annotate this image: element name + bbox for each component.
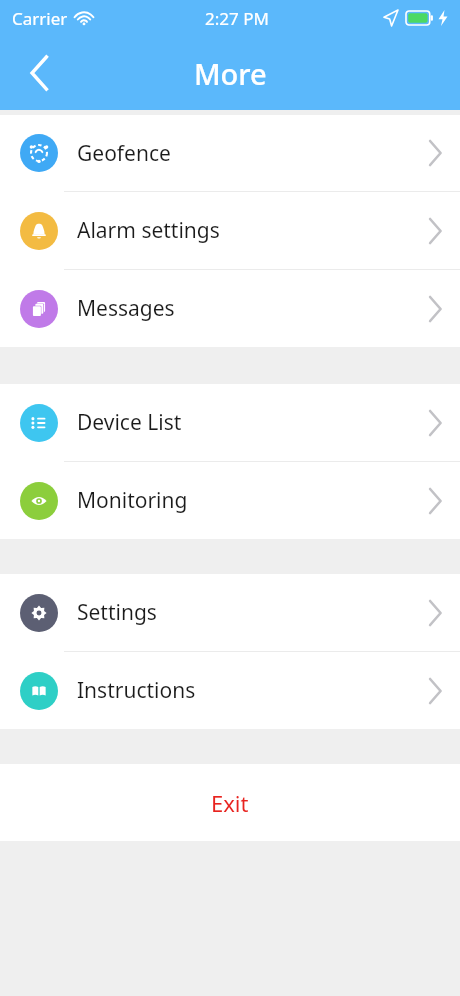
button[interactable]: Exit bbox=[0, 764, 460, 841]
staticText: Exit bbox=[211, 788, 249, 818]
button[interactable]: Monitoring bbox=[0, 462, 460, 539]
staticText: Messages bbox=[77, 294, 175, 323]
staticText: Carrier bbox=[12, 7, 68, 30]
button[interactable]: Geofence bbox=[0, 115, 460, 191]
staticText: Monitoring bbox=[77, 486, 188, 515]
button[interactable]: Alarm settings bbox=[0, 192, 460, 269]
staticText: More bbox=[194, 54, 267, 93]
button[interactable]: Device List bbox=[0, 384, 460, 461]
staticText: Geofence bbox=[77, 139, 171, 168]
staticText: Device List bbox=[77, 408, 182, 437]
button[interactable]: Back bbox=[14, 47, 66, 99]
button[interactable]: Settings bbox=[0, 574, 460, 651]
button[interactable]: Instructions bbox=[0, 652, 460, 729]
staticText: Instructions bbox=[77, 676, 196, 705]
staticText: Alarm settings bbox=[77, 216, 220, 245]
staticText: 2:27 PM bbox=[205, 7, 269, 30]
staticText: Settings bbox=[77, 598, 157, 627]
button[interactable]: Messages bbox=[0, 270, 460, 347]
